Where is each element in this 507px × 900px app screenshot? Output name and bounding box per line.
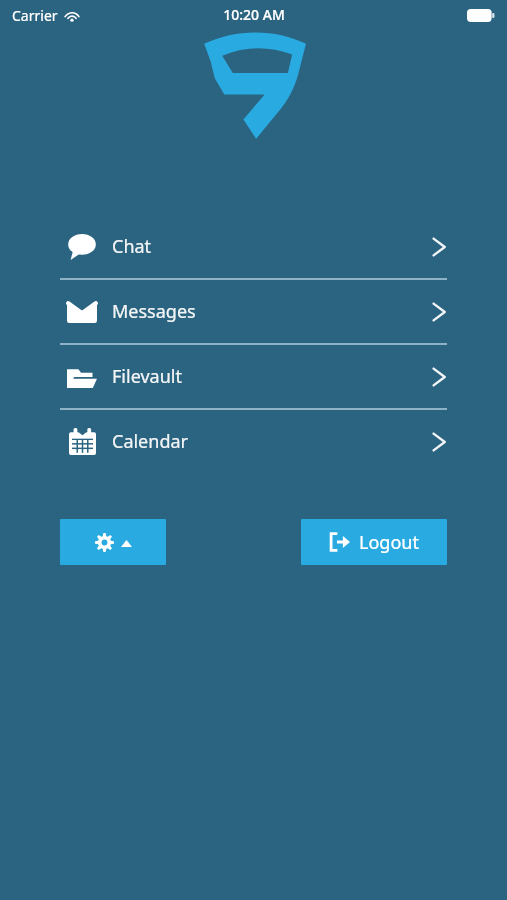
button[interactable]: Calendar [0, 410, 507, 473]
staticText: 10:20 AM [223, 5, 285, 24]
staticText: Calendar [112, 429, 188, 454]
staticText: Filevault [112, 364, 182, 389]
button[interactable]: Settings [60, 519, 166, 565]
staticText: Logout [359, 530, 419, 555]
staticText: Carrier [12, 6, 58, 25]
button[interactable]: Logout [301, 519, 447, 565]
staticText: Chat [112, 234, 152, 259]
staticText: Messages [112, 299, 196, 324]
button[interactable]: Filevault [0, 345, 507, 408]
button[interactable]: Messages [0, 280, 507, 343]
button[interactable]: Chat [0, 215, 507, 278]
